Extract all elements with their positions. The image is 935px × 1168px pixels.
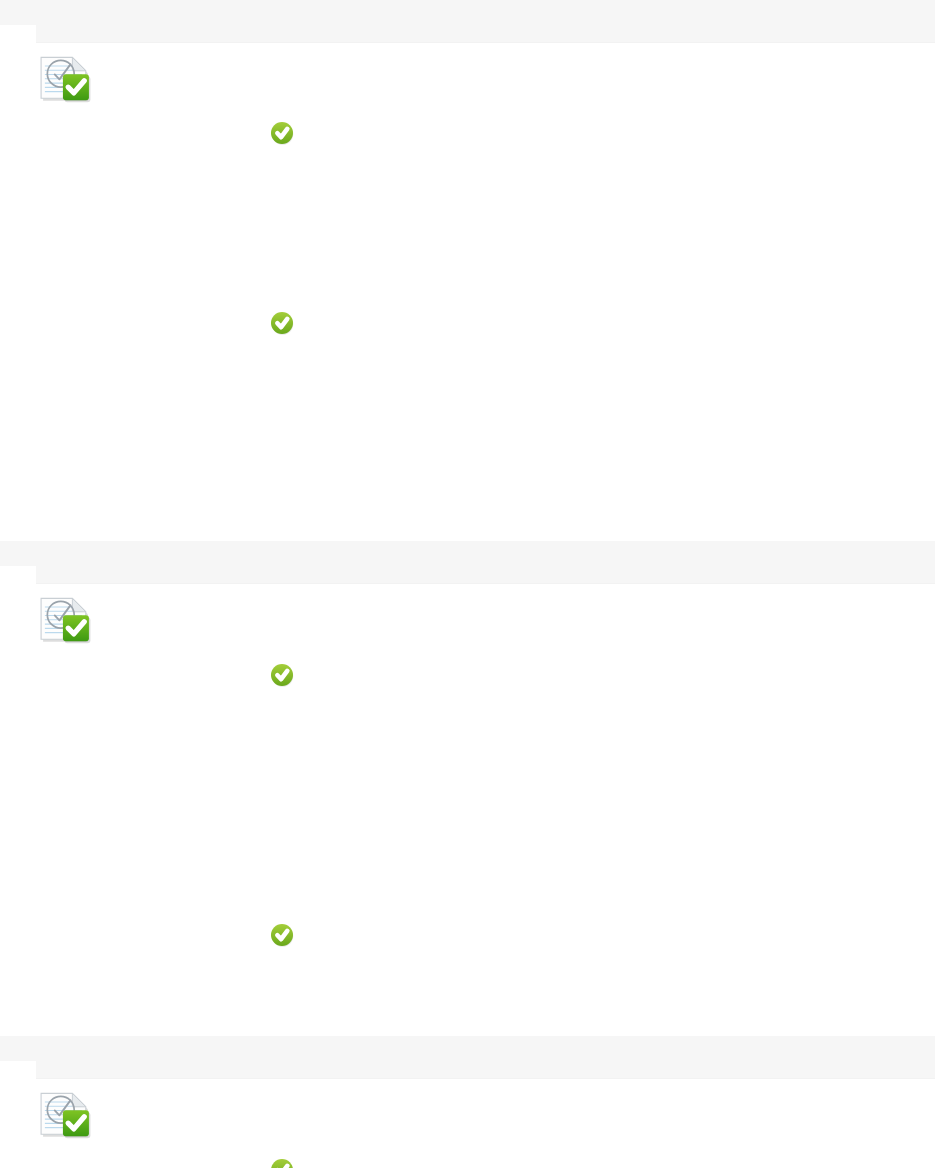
button[interactable]: Completed document — [39, 596, 91, 644]
button[interactable]: Completed document — [39, 1091, 91, 1139]
button[interactable]: Verified — [271, 1159, 293, 1168]
button[interactable]: Verified — [271, 924, 293, 946]
button[interactable]: Verified — [271, 122, 293, 144]
button[interactable]: Verified — [271, 664, 293, 686]
button[interactable]: Verified — [271, 312, 293, 334]
button[interactable]: Completed document — [39, 55, 91, 103]
